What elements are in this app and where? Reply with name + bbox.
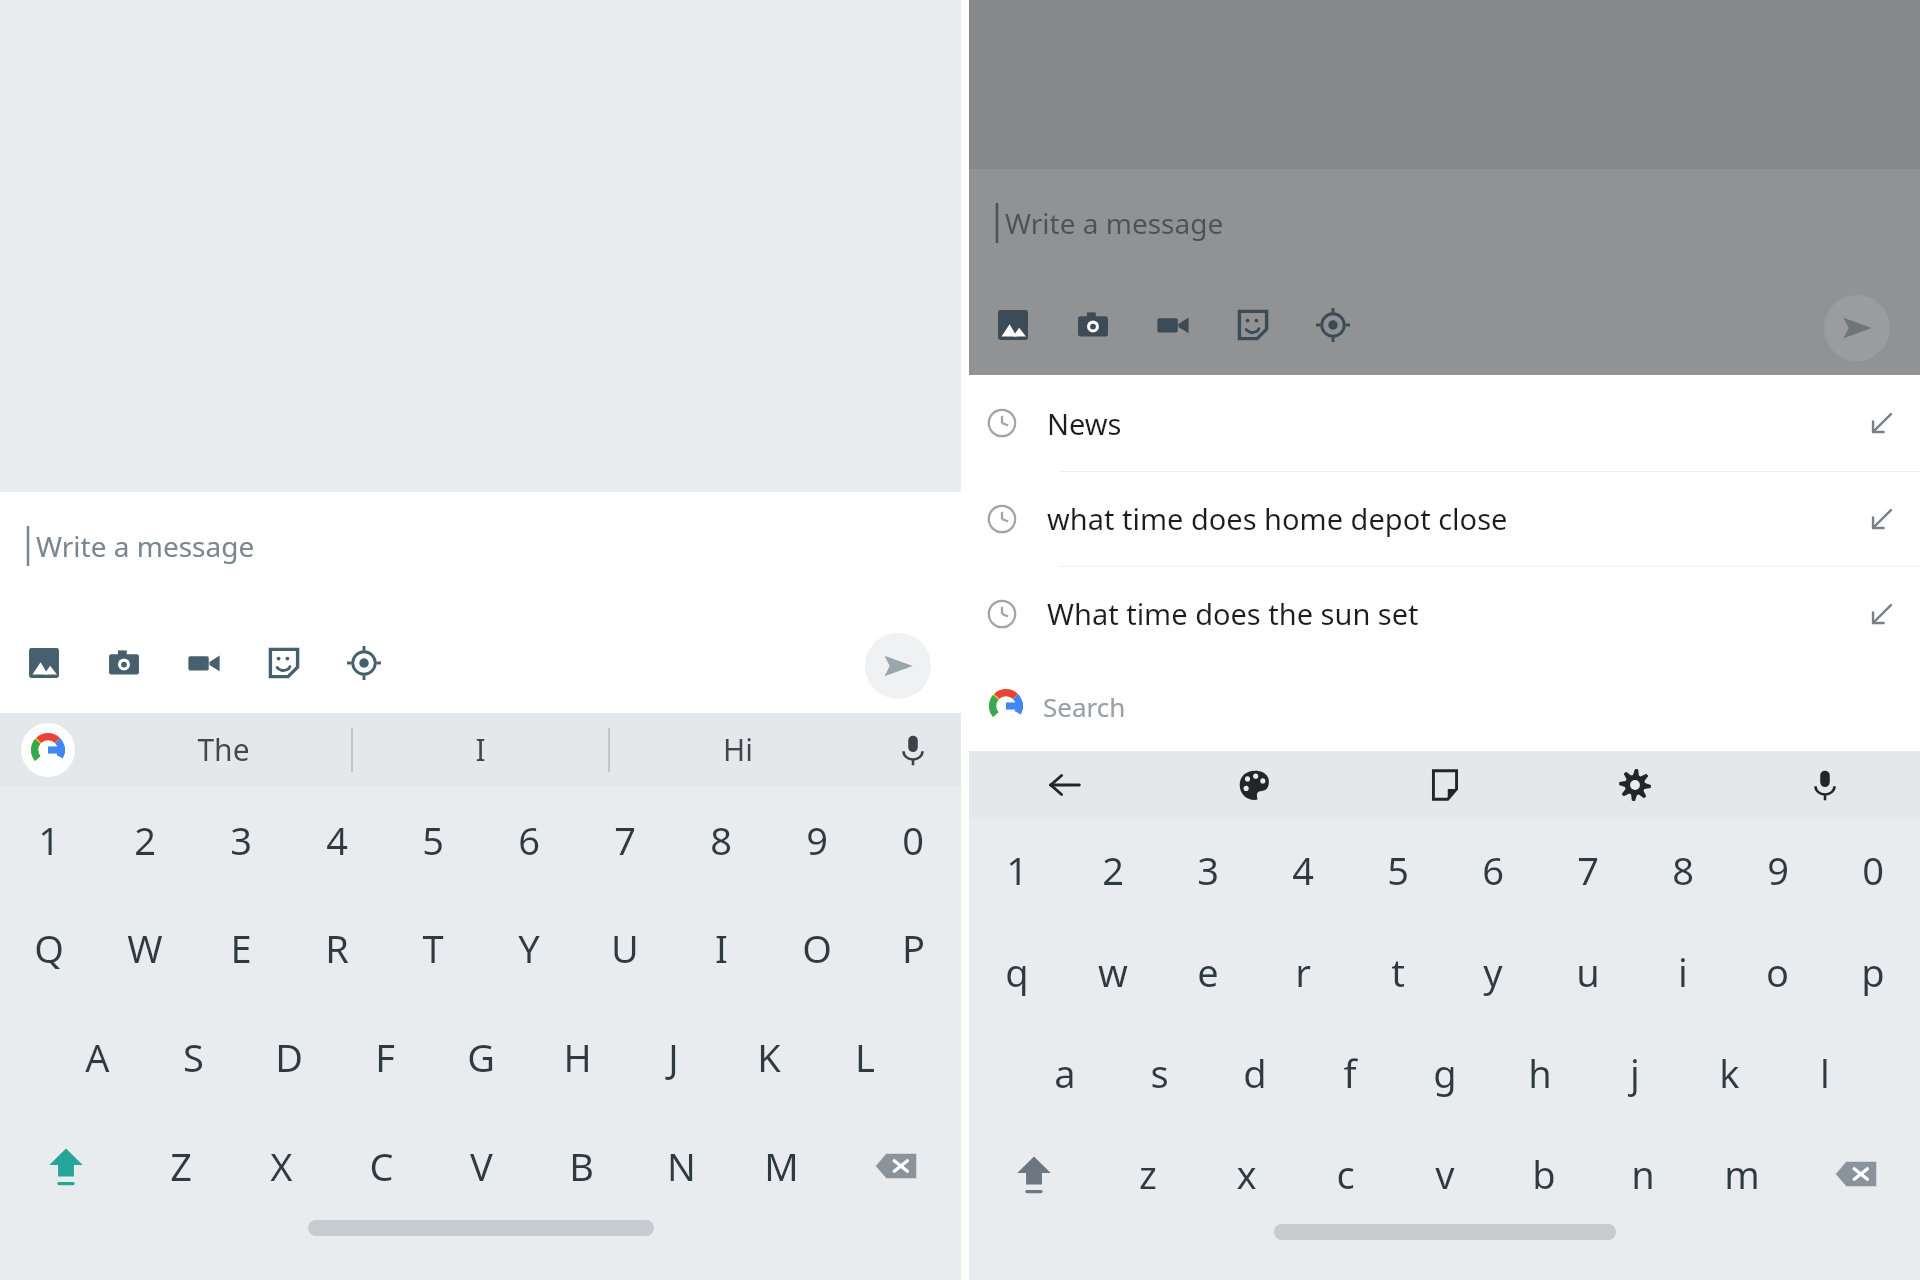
button[interactable]: d bbox=[1207, 1022, 1302, 1123]
button[interactable]: 2 bbox=[1065, 819, 1160, 921]
button[interactable]: 8 bbox=[1635, 819, 1730, 921]
button[interactable]: e bbox=[1160, 921, 1255, 1022]
button[interactable]: 6 bbox=[1445, 819, 1540, 921]
button[interactable]: R bbox=[289, 894, 385, 1002]
button[interactable]: g bbox=[1397, 1022, 1492, 1123]
button[interactable]: l bbox=[1777, 1022, 1872, 1123]
button[interactable]: S bbox=[145, 1002, 241, 1111]
button[interactable]: o bbox=[1730, 921, 1825, 1022]
button[interactable]: 5 bbox=[1350, 819, 1445, 921]
button[interactable]: 7 bbox=[577, 786, 673, 894]
button[interactable]: Share location bbox=[340, 639, 388, 687]
button[interactable]: b bbox=[1494, 1123, 1593, 1224]
button[interactable]: t bbox=[1350, 921, 1445, 1022]
button[interactable]: Shift bbox=[969, 1123, 1098, 1224]
button[interactable]: z bbox=[1098, 1123, 1197, 1224]
button[interactable]: C bbox=[331, 1111, 431, 1220]
button[interactable]: 9 bbox=[1730, 819, 1825, 921]
button[interactable]: 2 bbox=[97, 786, 193, 894]
button[interactable]: Voice input bbox=[1730, 751, 1920, 819]
button[interactable]: E bbox=[193, 894, 289, 1002]
button[interactable]: Hi bbox=[610, 713, 865, 786]
button[interactable]: K bbox=[721, 1002, 817, 1111]
button[interactable]: Space bbox=[308, 1220, 654, 1236]
button[interactable]: T bbox=[385, 894, 481, 1002]
button[interactable]: h bbox=[1492, 1022, 1587, 1123]
button[interactable]: Stickers bbox=[1350, 751, 1540, 819]
button[interactable]: n bbox=[1593, 1123, 1692, 1224]
button[interactable]: s bbox=[1112, 1022, 1207, 1123]
button[interactable]: 4 bbox=[1255, 819, 1350, 921]
button[interactable]: H bbox=[529, 1002, 625, 1111]
button[interactable]: r bbox=[1255, 921, 1350, 1022]
button[interactable]: Insert image bbox=[20, 639, 68, 687]
button[interactable]: 9 bbox=[769, 786, 865, 894]
button[interactable]: f bbox=[1302, 1022, 1397, 1123]
button[interactable]: j bbox=[1587, 1022, 1682, 1123]
button[interactable]: F bbox=[337, 1002, 433, 1111]
button[interactable]: Send bbox=[865, 633, 931, 699]
button[interactable]: q bbox=[969, 921, 1065, 1022]
button[interactable]: p bbox=[1825, 921, 1920, 1022]
button[interactable]: I bbox=[673, 894, 769, 1002]
button[interactable]: 1 bbox=[969, 819, 1065, 921]
button[interactable]: O bbox=[769, 894, 865, 1002]
button[interactable]: Send sticker bbox=[1229, 301, 1277, 349]
button[interactable]: V bbox=[431, 1111, 531, 1220]
button[interactable]: 1 bbox=[0, 786, 97, 894]
button[interactable]: w bbox=[1065, 921, 1160, 1022]
button[interactable]: Space bbox=[1274, 1224, 1616, 1240]
button[interactable]: c bbox=[1296, 1123, 1395, 1224]
button[interactable]: x bbox=[1197, 1123, 1296, 1224]
button[interactable]: X bbox=[231, 1111, 331, 1220]
button[interactable]: Shift bbox=[0, 1111, 131, 1220]
button[interactable]: Send bbox=[1824, 295, 1890, 361]
button[interactable]: Search bbox=[969, 661, 1920, 751]
button[interactable]: v bbox=[1395, 1123, 1494, 1224]
button[interactable]: Record video bbox=[180, 639, 228, 687]
button[interactable]: 3 bbox=[193, 786, 289, 894]
button[interactable]: Take photo bbox=[100, 639, 148, 687]
button[interactable]: Voice input bbox=[865, 713, 961, 786]
button[interactable]: Google bbox=[0, 713, 96, 786]
button[interactable]: Z bbox=[131, 1111, 231, 1220]
button[interactable]: B bbox=[531, 1111, 631, 1220]
button[interactable]: Y bbox=[481, 894, 577, 1002]
button[interactable]: 8 bbox=[673, 786, 769, 894]
button[interactable]: y bbox=[1445, 921, 1540, 1022]
button[interactable]: i bbox=[1635, 921, 1730, 1022]
button[interactable]: Backspace bbox=[831, 1111, 961, 1220]
button[interactable]: I bbox=[353, 713, 608, 786]
button[interactable]: Record video bbox=[1149, 301, 1197, 349]
button[interactable]: Send sticker bbox=[260, 639, 308, 687]
button[interactable]: Q bbox=[0, 894, 97, 1002]
button[interactable]: P bbox=[865, 894, 961, 1002]
button[interactable]: 4 bbox=[289, 786, 385, 894]
button[interactable]: D bbox=[241, 1002, 337, 1111]
button[interactable]: The bbox=[96, 713, 351, 786]
button[interactable]: 6 bbox=[481, 786, 577, 894]
button[interactable]: L bbox=[817, 1002, 913, 1111]
button[interactable]: Settings bbox=[1540, 751, 1730, 819]
button[interactable]: Backspace bbox=[1791, 1123, 1920, 1224]
button[interactable]: Share location bbox=[1309, 301, 1357, 349]
button[interactable]: Back bbox=[969, 751, 1160, 819]
button[interactable]: N bbox=[631, 1111, 731, 1220]
button[interactable]: 3 bbox=[1160, 819, 1255, 921]
button[interactable]: a bbox=[1017, 1022, 1112, 1123]
button[interactable]: Insert image bbox=[989, 301, 1037, 349]
button[interactable]: A bbox=[49, 1002, 145, 1111]
button[interactable]: 7 bbox=[1540, 819, 1635, 921]
button[interactable]: what time does home depot close bbox=[969, 471, 1920, 566]
button[interactable]: 5 bbox=[385, 786, 481, 894]
button[interactable]: M bbox=[731, 1111, 831, 1220]
button[interactable]: 0 bbox=[865, 786, 961, 894]
button[interactable]: J bbox=[625, 1002, 721, 1111]
button[interactable]: m bbox=[1692, 1123, 1791, 1224]
button[interactable]: Take photo bbox=[1069, 301, 1117, 349]
button[interactable]: What time does the sun set bbox=[969, 566, 1920, 661]
button[interactable]: W bbox=[97, 894, 193, 1002]
button[interactable]: u bbox=[1540, 921, 1635, 1022]
button[interactable]: News bbox=[969, 375, 1920, 471]
button[interactable]: U bbox=[577, 894, 673, 1002]
